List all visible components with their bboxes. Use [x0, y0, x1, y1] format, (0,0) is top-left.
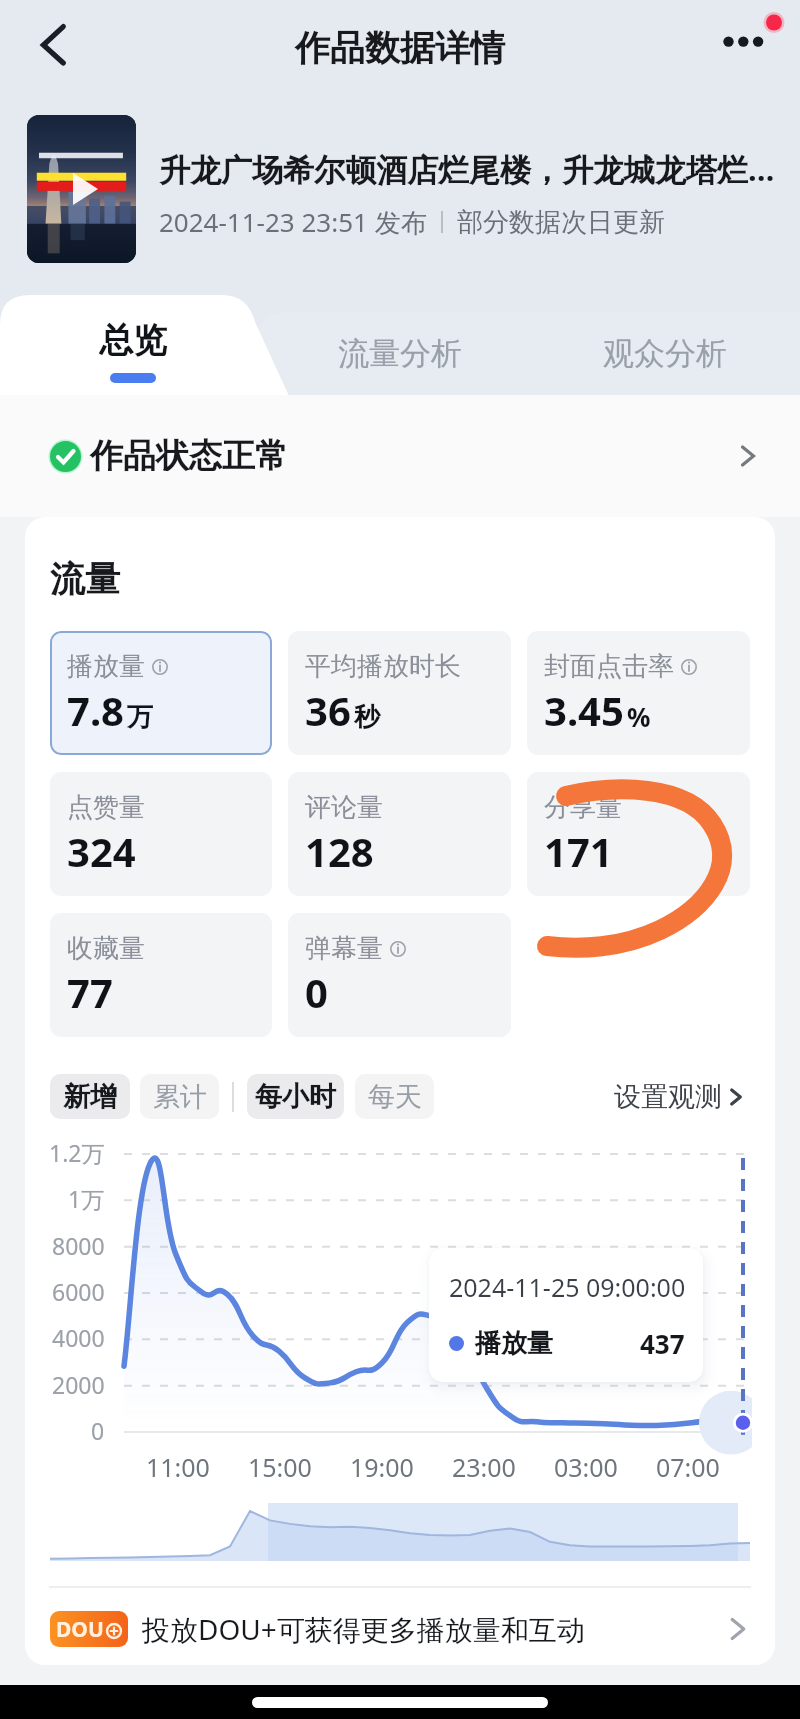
button[interactable]: 累计 — [140, 1074, 219, 1119]
button[interactable]: Video thumbnail — [27, 115, 136, 263]
staticText: 弹幕量 — [305, 932, 383, 965]
staticText: 每天 — [368, 1080, 422, 1114]
staticText: 11:00 — [146, 1450, 210, 1484]
staticText: 2000 — [52, 1369, 105, 1400]
staticText: 77 — [67, 965, 113, 1019]
staticText: 0 — [91, 1415, 105, 1446]
staticText: 07:00 — [656, 1450, 720, 1484]
staticText: 324 — [67, 824, 136, 878]
staticText: 新增 — [63, 1080, 117, 1114]
staticText: 累计 — [153, 1080, 207, 1114]
button[interactable]: 封面点击率 — [527, 631, 750, 755]
staticText: 设置观测 — [614, 1080, 722, 1114]
staticText: 3.45 — [544, 683, 624, 737]
button[interactable]: 平均播放时长 — [288, 631, 511, 755]
staticText: 23:00 — [452, 1450, 516, 1484]
staticText: 收藏量 — [67, 932, 145, 965]
staticText: 分享量 — [544, 791, 622, 824]
staticText: 每小时 — [255, 1080, 336, 1114]
staticText: 秒 — [354, 701, 380, 734]
staticText: 19:00 — [350, 1450, 414, 1484]
staticText: 8000 — [52, 1230, 105, 1261]
staticText: 15:00 — [248, 1450, 312, 1484]
button[interactable]: More options — [699, 7, 787, 77]
staticText: 播放量 — [67, 650, 145, 683]
staticText: 0 — [305, 965, 328, 1019]
staticText: 升龙广场希尔顿酒店烂尾楼，升龙城龙塔烂… — [159, 148, 775, 190]
button[interactable]: 总览 — [0, 290, 272, 396]
button[interactable]: Back — [20, 10, 90, 80]
staticText: 128 — [305, 824, 374, 878]
staticText: 总览 — [99, 319, 167, 362]
button[interactable]: 分享量 — [527, 772, 750, 896]
button[interactable]: 弹幕量 — [288, 913, 511, 1037]
button[interactable]: 播放量 — [50, 631, 272, 755]
staticText: 2024-11-23 23:51 发布 — [159, 204, 427, 240]
staticText: 7.8 — [67, 683, 124, 737]
staticText: 36 — [305, 683, 351, 737]
button[interactable]: 每小时 — [247, 1074, 344, 1119]
staticText: 万 — [127, 701, 153, 734]
button[interactable]: 收藏量 — [50, 913, 272, 1037]
button[interactable]: DOU — [25, 1590, 775, 1665]
button[interactable]: 每天 — [355, 1074, 434, 1119]
staticText: 2024-11-25 09:00:00 — [449, 1270, 686, 1304]
staticText: 观众分析 — [603, 334, 727, 373]
staticText: 点赞量 — [67, 791, 145, 824]
staticText: 播放量 — [475, 1327, 553, 1360]
staticText: 1万 — [68, 1183, 105, 1214]
staticText: DOU — [56, 1615, 104, 1644]
staticText: 作品状态正常 — [90, 435, 288, 477]
staticText: 流量 — [50, 557, 120, 601]
button[interactable]: 流量分析 — [290, 312, 510, 395]
button[interactable]: 作品状态正常 — [0, 395, 800, 517]
staticText: 评论量 — [305, 791, 383, 824]
staticText: 封面点击率 — [544, 650, 674, 683]
staticText: % — [627, 699, 651, 734]
button[interactable]: 设置观测 — [614, 1080, 750, 1114]
staticText: 作品数据详情 — [295, 26, 505, 70]
button[interactable]: 观众分析 — [555, 312, 775, 395]
staticText: 4000 — [52, 1322, 105, 1353]
staticText: 部分数据次日更新 — [457, 206, 665, 239]
staticText: 流量分析 — [338, 334, 462, 373]
button[interactable]: 点赞量 — [50, 772, 272, 896]
button[interactable]: 评论量 — [288, 772, 511, 896]
staticText: 平均播放时长 — [305, 650, 461, 683]
staticText: 437 — [640, 1326, 685, 1361]
button[interactable]: 新增 — [50, 1074, 130, 1119]
staticText: 6000 — [52, 1276, 105, 1307]
staticText: 投放DOU+可获得更多播放量和互动 — [142, 1610, 585, 1648]
staticText: 03:00 — [554, 1450, 618, 1484]
staticText: 1.2万 — [49, 1137, 105, 1168]
staticText: 171 — [544, 824, 613, 878]
